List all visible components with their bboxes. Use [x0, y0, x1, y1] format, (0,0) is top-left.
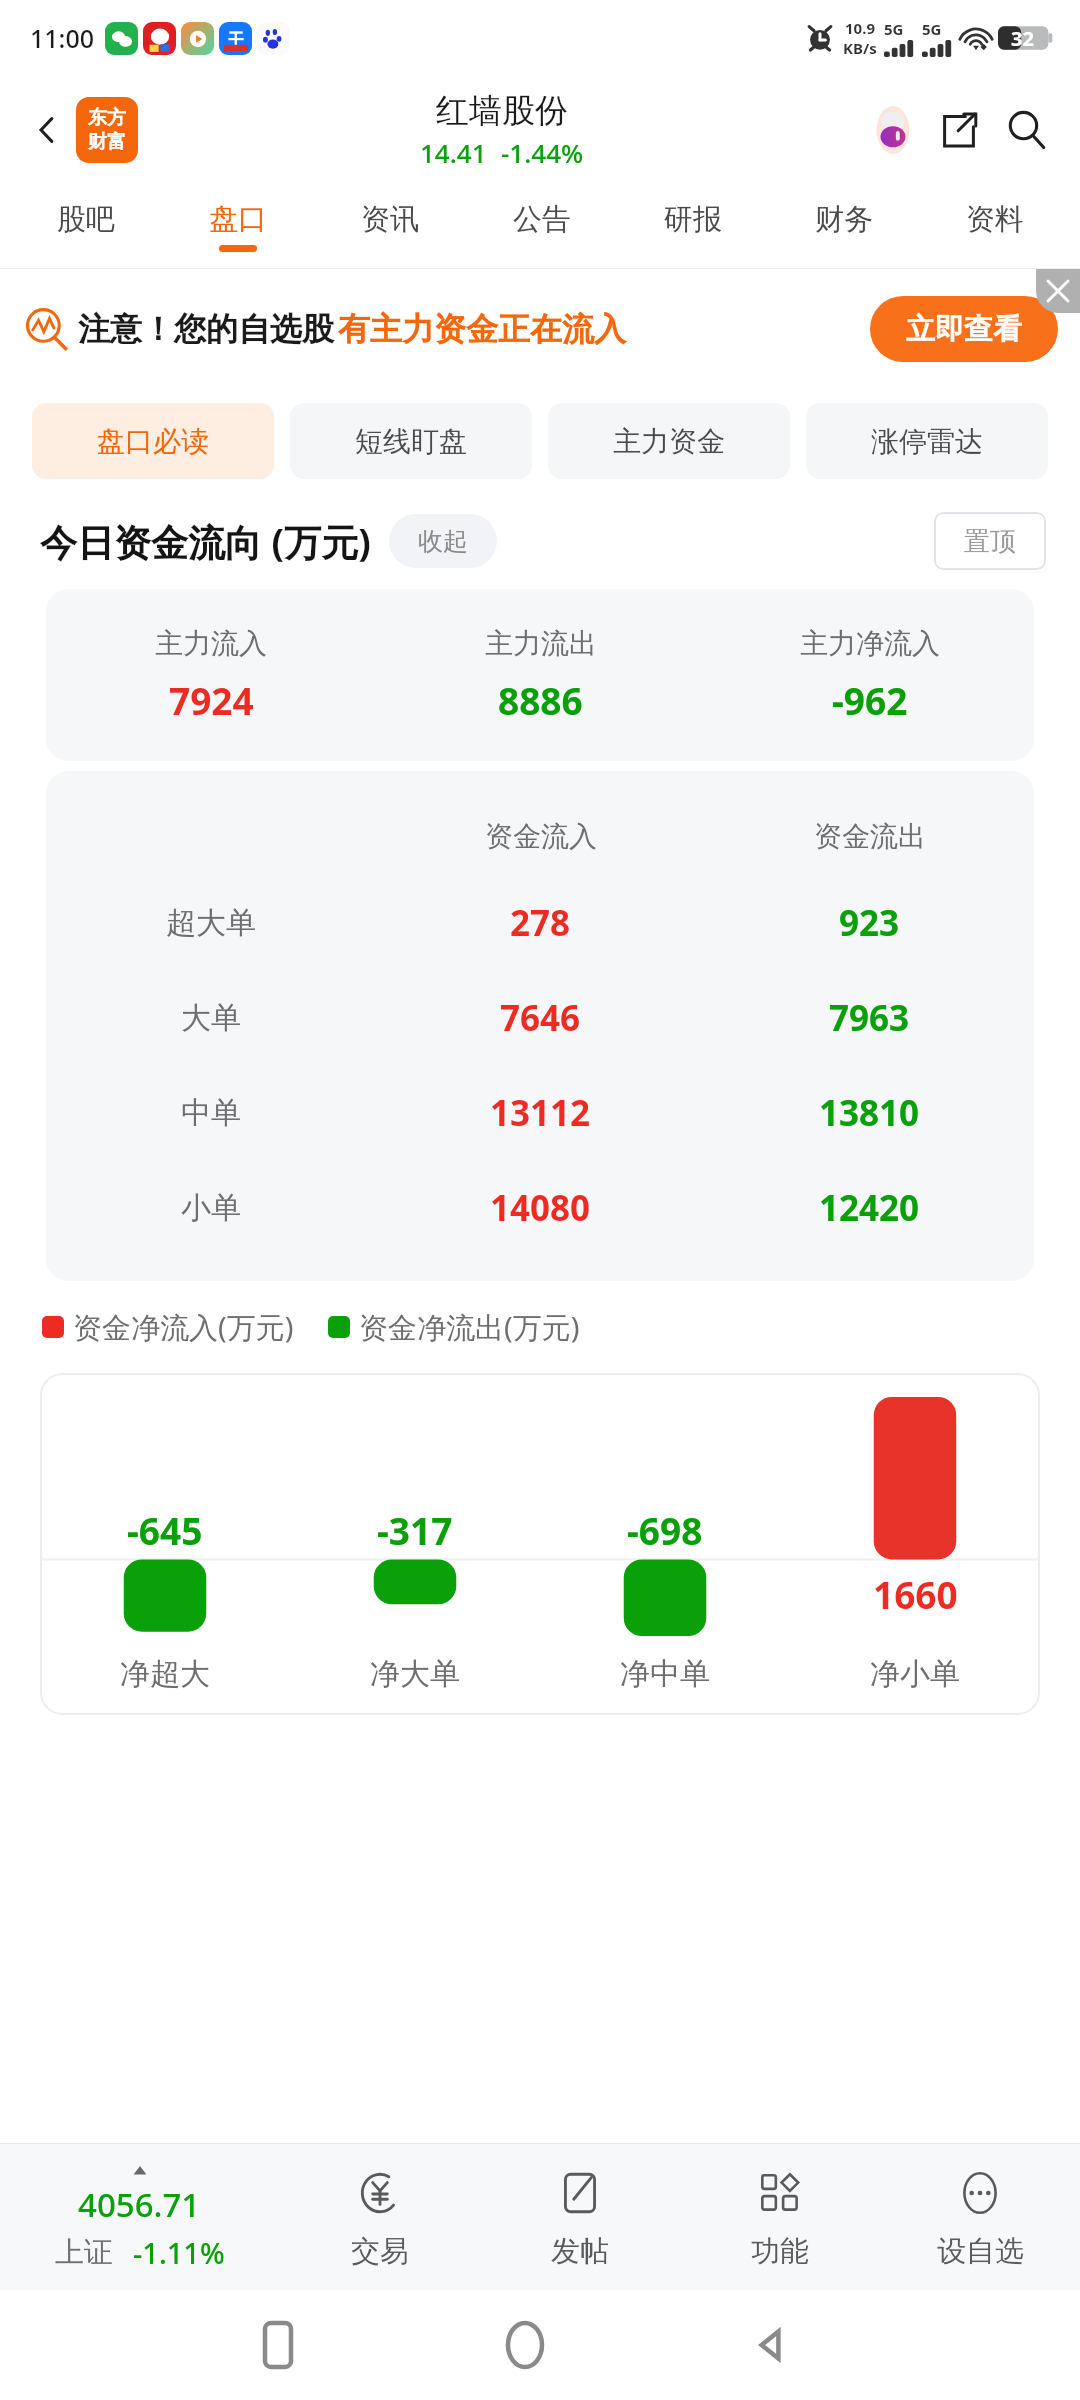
- staticText: 涨停雷达: [871, 424, 983, 459]
- button[interactable]: 盘口: [162, 184, 314, 268]
- button[interactable]: 短线盯盘: [290, 403, 532, 479]
- staticText: 您的自选股: [174, 309, 334, 349]
- staticText: 8886: [498, 675, 583, 725]
- button[interactable]: 研报: [617, 184, 768, 268]
- button[interactable]: 中单: [46, 1065, 1034, 1160]
- staticText: 大单: [181, 999, 241, 1037]
- staticText: 收起: [418, 526, 468, 557]
- staticText: 4056.71: [78, 2182, 201, 2227]
- button[interactable]: 盘口必读: [32, 403, 274, 479]
- staticText: -645: [127, 1505, 203, 1555]
- staticText: -1.44%: [501, 135, 584, 170]
- button[interactable]: 涨停雷达: [806, 403, 1048, 479]
- button[interactable]: 财务: [768, 184, 919, 268]
- staticText: 发帖: [551, 2233, 609, 2270]
- button[interactable]: Back: [648, 2290, 895, 2400]
- staticText: -317: [377, 1505, 453, 1555]
- staticText: 资金流入: [485, 819, 597, 854]
- staticText: 净中单: [620, 1655, 710, 1693]
- staticText: 东方: [88, 106, 126, 130]
- button[interactable]: 资料: [919, 184, 1070, 268]
- staticText: 财富: [88, 130, 126, 154]
- staticText: 10.9: [845, 18, 875, 38]
- staticText: 主力净流入: [800, 626, 940, 661]
- staticText: 主力流出: [485, 626, 597, 661]
- staticText: 超大单: [166, 904, 256, 942]
- button[interactable]: East Money home: [76, 97, 138, 163]
- button[interactable]: 资讯: [314, 184, 466, 268]
- staticText: 上证: [55, 2234, 113, 2271]
- staticText: 立即查看: [906, 311, 1022, 348]
- staticText: -698: [627, 1505, 703, 1555]
- staticText: 功能: [751, 2233, 809, 2270]
- button[interactable]: 交易: [279, 2144, 480, 2290]
- staticText: 设自选: [937, 2233, 1024, 2270]
- button[interactable]: 设自选: [880, 2144, 1080, 2290]
- staticText: 11:00: [30, 21, 95, 55]
- staticText: -962: [832, 675, 908, 725]
- button[interactable]: Recents: [154, 2290, 401, 2400]
- staticText: 13810: [819, 1089, 920, 1137]
- staticText: 交易: [351, 2233, 409, 2270]
- staticText: 资金净流入(万元): [73, 1307, 294, 1347]
- staticText: 资金流出: [814, 819, 926, 854]
- staticText: 有主力资金正在流入: [338, 309, 626, 349]
- button[interactable]: Search: [1000, 103, 1054, 157]
- staticText: 7924: [169, 675, 254, 725]
- staticText: 13112: [490, 1089, 591, 1137]
- staticText: 5G: [922, 19, 942, 39]
- staticText: 1660: [873, 1569, 958, 1619]
- button[interactable]: 主力资金: [548, 403, 790, 479]
- button[interactable]: 收起: [389, 514, 497, 568]
- staticText: 32: [1011, 25, 1034, 52]
- staticText: 资金净流出(万元): [359, 1307, 580, 1347]
- staticText: 净小单: [870, 1655, 960, 1693]
- button[interactable]: AI assistant: [866, 103, 920, 157]
- staticText: 7963: [829, 994, 910, 1042]
- button[interactable]: 4056.71: [0, 2144, 279, 2290]
- staticText: 财务: [815, 201, 873, 238]
- staticText: 净超大: [120, 1655, 210, 1693]
- staticText: 置顶: [964, 525, 1016, 558]
- staticText: 资料: [966, 201, 1024, 238]
- staticText: -1.11%: [133, 2233, 225, 2272]
- staticText: KB/s: [843, 38, 877, 58]
- staticText: 今日资金流向 (万元): [40, 516, 371, 567]
- staticText: 股吧: [57, 201, 115, 238]
- button[interactable]: 股吧: [10, 184, 162, 268]
- staticText: 盘口必读: [97, 424, 209, 459]
- staticText: 研报: [664, 201, 722, 238]
- staticText: 14.41: [420, 135, 487, 170]
- staticText: 盘口: [209, 201, 267, 238]
- staticText: 中单: [181, 1094, 241, 1132]
- staticText: 主力资金: [613, 424, 725, 459]
- staticText: 公告: [513, 201, 571, 238]
- staticText: 红墙股份: [436, 90, 568, 132]
- button[interactable]: 功能: [680, 2144, 880, 2290]
- button[interactable]: 发帖: [480, 2144, 680, 2290]
- staticText: 14080: [490, 1184, 591, 1232]
- button[interactable]: Share: [932, 103, 986, 157]
- button[interactable]: 大单: [46, 970, 1034, 1065]
- staticText: 小单: [181, 1189, 241, 1227]
- button[interactable]: 立即查看: [870, 296, 1058, 362]
- button[interactable]: 公告: [466, 184, 617, 268]
- staticText: 资讯: [361, 201, 419, 238]
- button[interactable]: 超大单: [46, 875, 1034, 970]
- staticText: 12420: [819, 1184, 920, 1232]
- button[interactable]: 置顶: [934, 512, 1046, 570]
- button[interactable]: Home: [401, 2290, 648, 2400]
- button[interactable]: Back: [20, 103, 74, 157]
- staticText: 短线盯盘: [355, 424, 467, 459]
- staticText: 主力流入: [155, 626, 267, 661]
- button[interactable]: 小单: [46, 1160, 1034, 1255]
- button[interactable]: Close banner: [1036, 269, 1080, 313]
- staticText: 7646: [500, 994, 581, 1042]
- staticText: 923: [839, 899, 900, 947]
- staticText: 注意！: [78, 309, 174, 349]
- staticText: 278: [510, 899, 571, 947]
- staticText: 5G: [884, 19, 904, 39]
- staticText: 净大单: [370, 1655, 460, 1693]
